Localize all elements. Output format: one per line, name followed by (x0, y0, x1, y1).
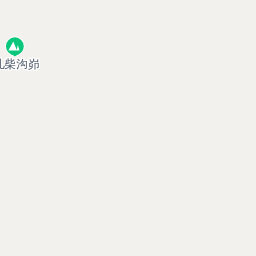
button[interactable]: 儿柴沟峁 (0, 57, 39, 71)
staticText: 儿柴沟峁 (0, 58, 39, 72)
staticText: 儿柴沟峁 (0, 58, 40, 72)
staticText: 儿柴沟峁 (0, 57, 40, 71)
staticText: 儿柴沟峁 (0, 57, 39, 71)
staticText: 儿柴沟峁 (0, 56, 40, 70)
button[interactable]: 柴沟峁 summit marker (4, 35, 26, 59)
staticText: 儿柴沟峁 (0, 57, 39, 71)
staticText: 儿柴沟峁 (0, 56, 39, 70)
staticText: 儿柴沟峁 (0, 56, 38, 70)
staticText: 儿柴沟峁 (0, 58, 38, 72)
staticText: 儿柴沟峁 (0, 57, 38, 71)
